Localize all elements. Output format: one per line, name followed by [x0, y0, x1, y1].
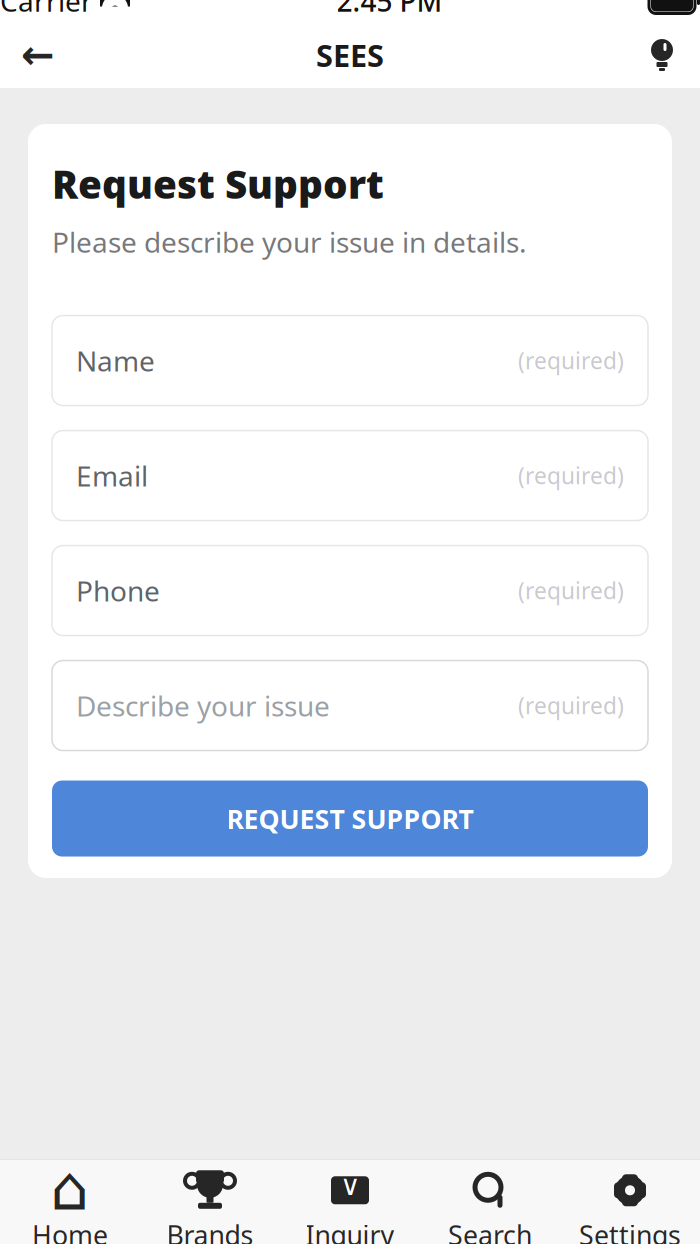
staticText: Request Support	[52, 158, 384, 209]
staticText: Name	[76, 342, 155, 379]
button[interactable]: Back	[8, 25, 68, 85]
staticText: Settings	[579, 1217, 681, 1244]
staticText: ⌂	[50, 1153, 89, 1223]
staticText: (required)	[518, 345, 624, 376]
button[interactable]: Describe your issue	[52, 660, 648, 750]
staticText: Search	[448, 1217, 532, 1244]
staticText: REQUEST SUPPORT	[226, 801, 473, 836]
button[interactable]: REQUEST SUPPORT	[52, 780, 648, 856]
staticText: (required)	[518, 690, 624, 721]
staticText: Phone	[76, 572, 160, 609]
staticText: 2:45 PM	[336, 0, 442, 20]
staticText: Inquiry	[305, 1217, 394, 1244]
staticText: ∨	[340, 1169, 360, 1201]
staticText: Brands	[166, 1217, 253, 1244]
staticText: Please describe your issue in details.	[52, 223, 527, 260]
button[interactable]: Phone	[52, 545, 648, 635]
button[interactable]: ⌂	[0, 1159, 140, 1244]
staticText: SEES	[316, 35, 384, 75]
staticText: Describe your issue	[76, 687, 330, 724]
button[interactable]: Settings	[560, 1159, 700, 1244]
button[interactable]: Tips	[632, 25, 692, 85]
button[interactable]: Name	[52, 315, 648, 405]
button[interactable]: Email	[52, 430, 648, 520]
staticText: Carrier	[0, 0, 93, 20]
staticText: ←	[21, 32, 55, 78]
button[interactable]: Brands	[140, 1159, 280, 1244]
button[interactable]: Search	[420, 1159, 560, 1244]
staticText: (required)	[518, 460, 624, 491]
staticText: (required)	[518, 575, 624, 606]
staticText: Email	[76, 457, 148, 494]
button[interactable]: ∨	[280, 1159, 420, 1244]
staticText: Home	[32, 1217, 108, 1244]
